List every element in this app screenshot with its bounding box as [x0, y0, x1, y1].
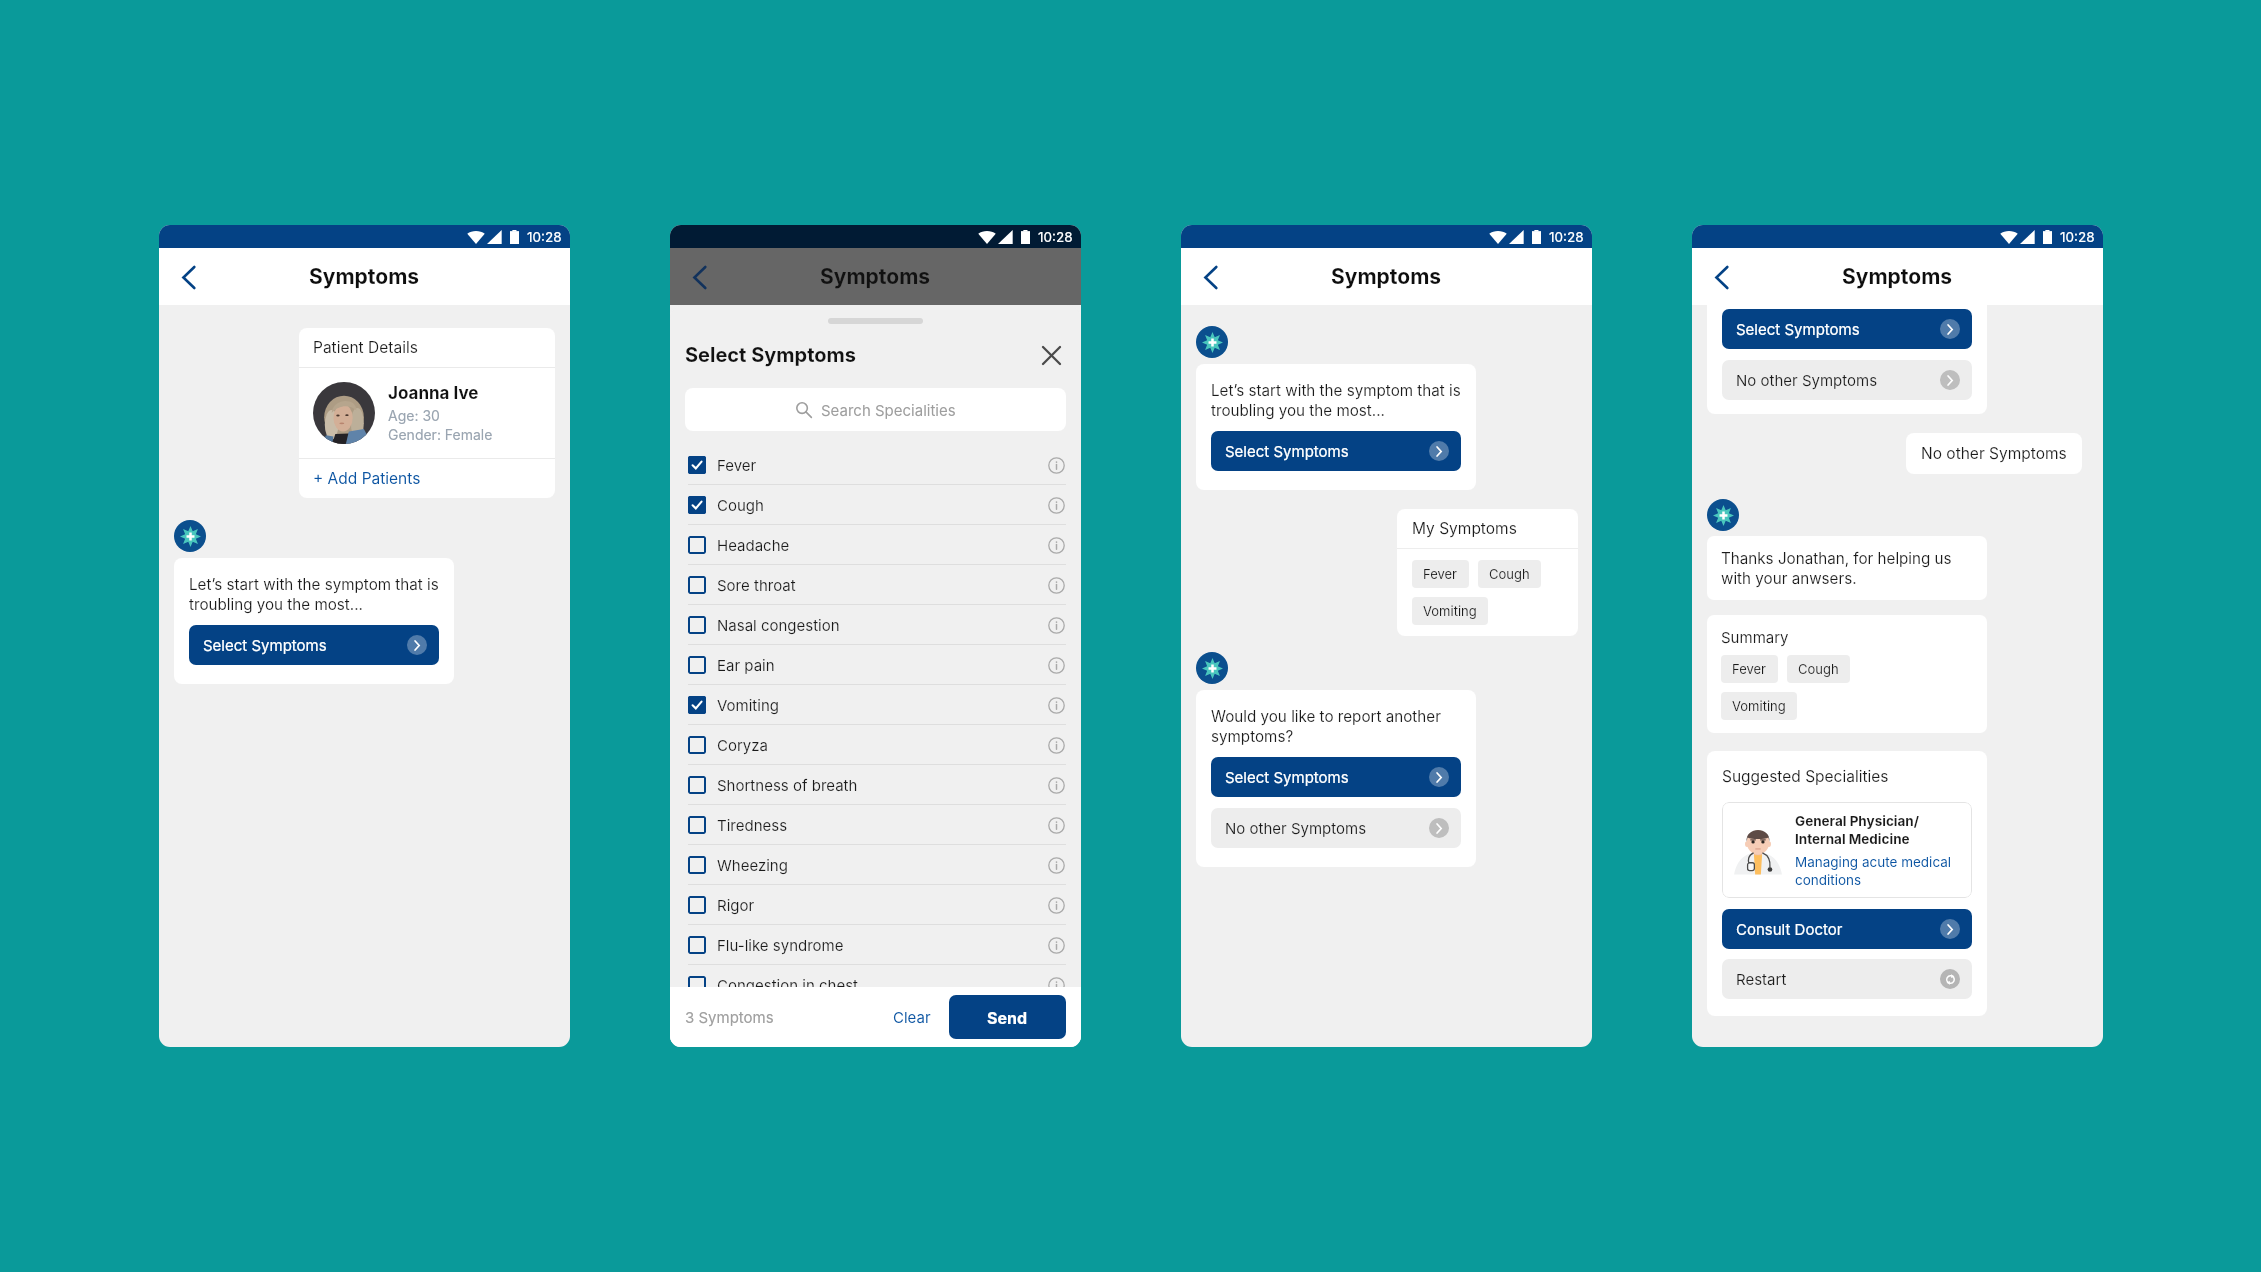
- staticText: Fever: [717, 456, 757, 474]
- staticText: 10:28: [1038, 229, 1073, 245]
- staticText: Shortness of breath: [717, 776, 858, 794]
- staticText: Vomiting: [1732, 698, 1786, 714]
- button[interactable]: Flu-like syndrome: [670, 925, 1081, 964]
- button[interactable]: Vomiting: [670, 685, 1081, 724]
- staticText: Symptoms: [820, 264, 931, 289]
- button[interactable]: Headache: [670, 525, 1081, 564]
- button[interactable]: Select Symptoms: [189, 625, 439, 665]
- button[interactable]: + Add Patients: [299, 459, 555, 498]
- staticText: Cough: [1798, 661, 1839, 677]
- staticText: Fever: [1732, 661, 1767, 677]
- button[interactable]: Back: [682, 259, 718, 295]
- staticText: Thanks Jonathan, for helping us with you…: [1721, 549, 1952, 587]
- button[interactable]: Back: [171, 259, 207, 295]
- staticText: Symptoms: [1842, 264, 1953, 289]
- button[interactable]: Select Symptoms: [1211, 431, 1461, 471]
- staticText: Symptoms: [309, 264, 420, 289]
- staticText: Cough: [717, 496, 764, 514]
- staticText: Select Symptoms: [1225, 442, 1349, 460]
- button[interactable]: Select Symptoms: [1211, 757, 1461, 797]
- button[interactable]: Info: [1046, 535, 1066, 555]
- button[interactable]: Wheezing: [670, 845, 1081, 884]
- staticText: 10:28: [527, 229, 562, 245]
- button[interactable]: Info: [1046, 815, 1066, 835]
- staticText: Congestion in chest: [717, 976, 859, 994]
- staticText: Select Symptoms: [203, 636, 327, 654]
- button[interactable]: Ear pain: [670, 645, 1081, 684]
- button[interactable]: Info: [1046, 695, 1066, 715]
- button[interactable]: Cough: [670, 485, 1081, 524]
- staticText: 10:28: [2060, 229, 2095, 245]
- button[interactable]: Congestion in chest: [670, 965, 1081, 1004]
- staticText: Clear: [893, 1008, 931, 1026]
- staticText: No other Symptoms: [1736, 371, 1878, 389]
- button[interactable]: Select Symptoms: [1722, 309, 1972, 349]
- staticText: Joanna Ive: [388, 383, 479, 404]
- staticText: Gender: Female: [388, 426, 493, 443]
- staticText: Let’s start with the symptom that is tro…: [189, 575, 439, 613]
- button[interactable]: Info: [1046, 935, 1066, 955]
- button[interactable]: Sore throat: [670, 565, 1081, 604]
- button[interactable]: Back: [1704, 259, 1740, 295]
- staticText: Search Specialities: [821, 401, 956, 419]
- button[interactable]: Info: [1046, 455, 1066, 475]
- button[interactable]: Info: [1046, 975, 1066, 995]
- button[interactable]: Info: [1046, 895, 1066, 915]
- staticText: Flu-like syndrome: [717, 936, 844, 954]
- staticText: Send: [987, 1008, 1028, 1027]
- staticText: Vomiting: [1423, 603, 1477, 619]
- staticText: Restart: [1736, 970, 1787, 988]
- button[interactable]: Shortness of breath: [670, 765, 1081, 804]
- button[interactable]: Info: [1046, 655, 1066, 675]
- staticText: Summary: [1721, 628, 1789, 646]
- staticText: Symptoms: [1331, 264, 1442, 289]
- button[interactable]: Back: [1193, 259, 1229, 295]
- staticText: Nasal congestion: [717, 616, 840, 634]
- button[interactable]: Info: [1046, 495, 1066, 515]
- staticText: Age: 30: [388, 407, 440, 424]
- button[interactable]: No other Symptoms: [1722, 360, 1972, 400]
- staticText: Tiredness: [717, 816, 788, 834]
- staticText: Select Symptoms: [685, 343, 857, 367]
- staticText: Managing acute medical conditions: [1795, 854, 1952, 888]
- button[interactable]: General Physician/ Internal Medicine: [1722, 802, 1972, 898]
- staticText: My Symptoms: [1412, 519, 1517, 538]
- staticText: Patient Details: [313, 338, 418, 357]
- button[interactable]: Tiredness: [670, 805, 1081, 844]
- staticText: Vomiting: [717, 696, 779, 714]
- button[interactable]: Nasal congestion: [670, 605, 1081, 644]
- button[interactable]: Restart: [1722, 959, 1972, 999]
- staticText: Headache: [717, 536, 790, 554]
- button[interactable]: Consult Doctor: [1722, 909, 1972, 949]
- button[interactable]: Info: [1046, 575, 1066, 595]
- button[interactable]: Info: [1046, 615, 1066, 635]
- staticText: Rigor: [717, 896, 755, 914]
- staticText: 3 Symptoms: [685, 1008, 774, 1026]
- staticText: No other Symptoms: [1921, 444, 2067, 463]
- button[interactable]: Coryza: [670, 725, 1081, 764]
- button[interactable]: Rigor: [670, 885, 1081, 924]
- button[interactable]: Info: [1046, 855, 1066, 875]
- staticText: Select Symptoms: [1736, 320, 1860, 338]
- staticText: Sore throat: [717, 576, 796, 594]
- staticText: Ear pain: [717, 656, 775, 674]
- button[interactable]: Info: [1046, 735, 1066, 755]
- staticText: Consult Doctor: [1736, 920, 1843, 938]
- staticText: General Physician/ Internal Medicine: [1795, 813, 1919, 847]
- staticText: Wheezing: [717, 856, 788, 874]
- button[interactable]: No other Symptoms: [1906, 433, 2082, 474]
- button[interactable]: Clear: [883, 1002, 941, 1032]
- button[interactable]: Search Specialities: [685, 388, 1066, 431]
- button[interactable]: No other Symptoms: [1211, 808, 1461, 848]
- staticText: Select Symptoms: [1225, 768, 1349, 786]
- staticText: Coryza: [717, 736, 768, 754]
- button[interactable]: Send: [949, 995, 1066, 1039]
- staticText: Fever: [1423, 566, 1458, 582]
- button[interactable]: Close: [1036, 340, 1066, 370]
- button[interactable]: Info: [1046, 775, 1066, 795]
- staticText: + Add Patients: [313, 469, 421, 488]
- staticText: Would you like to report another symptom…: [1211, 707, 1441, 745]
- staticText: 10:28: [1549, 229, 1584, 245]
- button[interactable]: Fever: [670, 445, 1081, 484]
- staticText: Let’s start with the symptom that is tro…: [1211, 381, 1461, 419]
